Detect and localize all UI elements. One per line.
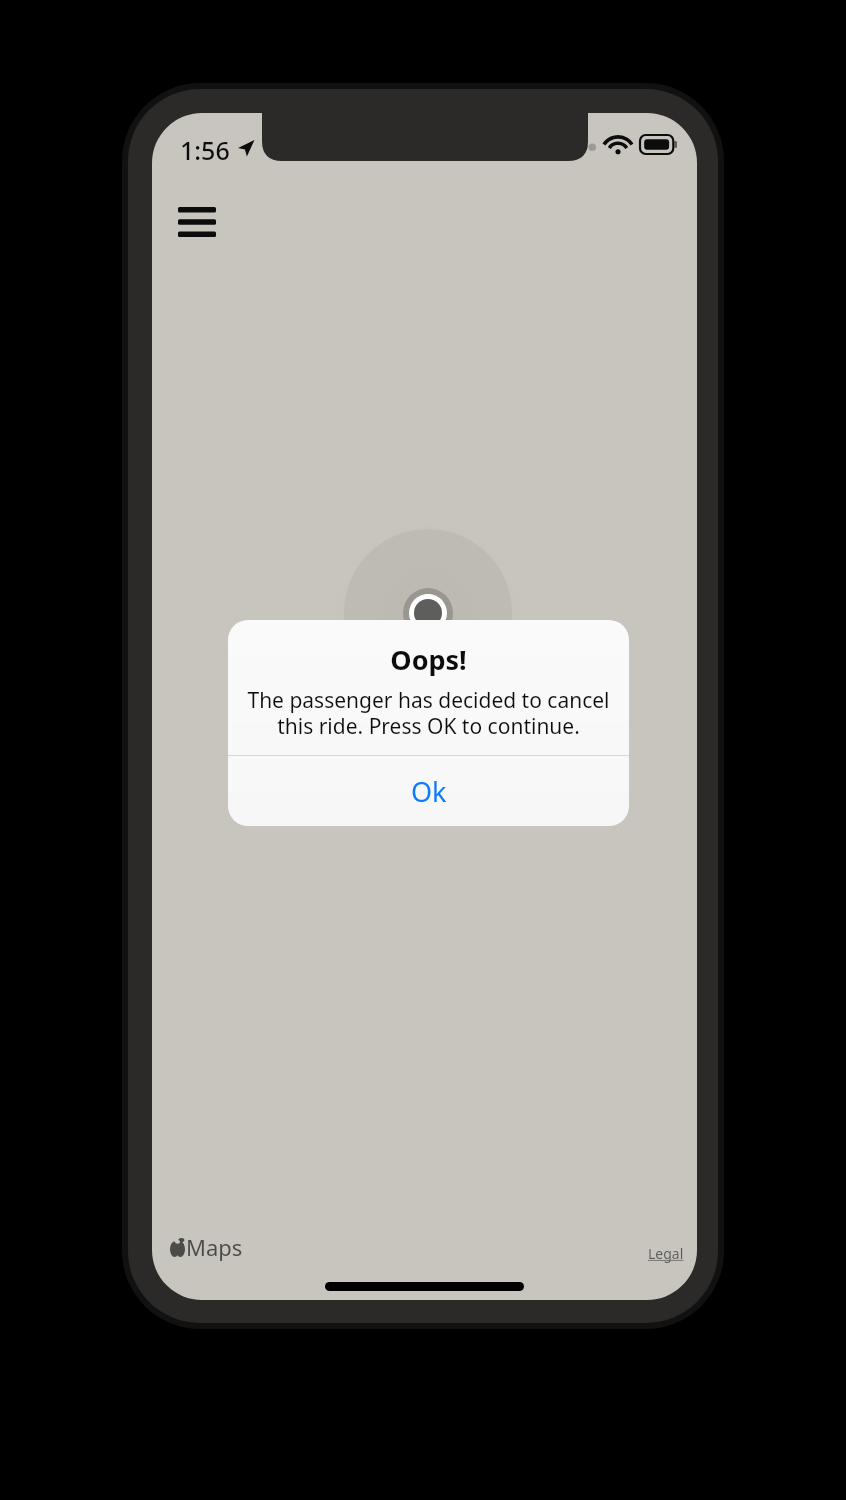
staticText: Maps	[186, 1232, 243, 1262]
staticText: 1:56	[180, 133, 230, 167]
button[interactable]: Menu	[170, 195, 224, 249]
button[interactable]: Ok	[228, 756, 629, 826]
staticText: Oops!	[390, 641, 467, 678]
staticText: The passenger has decided to cancel this…	[244, 686, 613, 741]
staticText: Ok	[411, 773, 447, 810]
button[interactable]: Legal	[648, 1244, 684, 1263]
staticText: Legal	[648, 1244, 684, 1263]
